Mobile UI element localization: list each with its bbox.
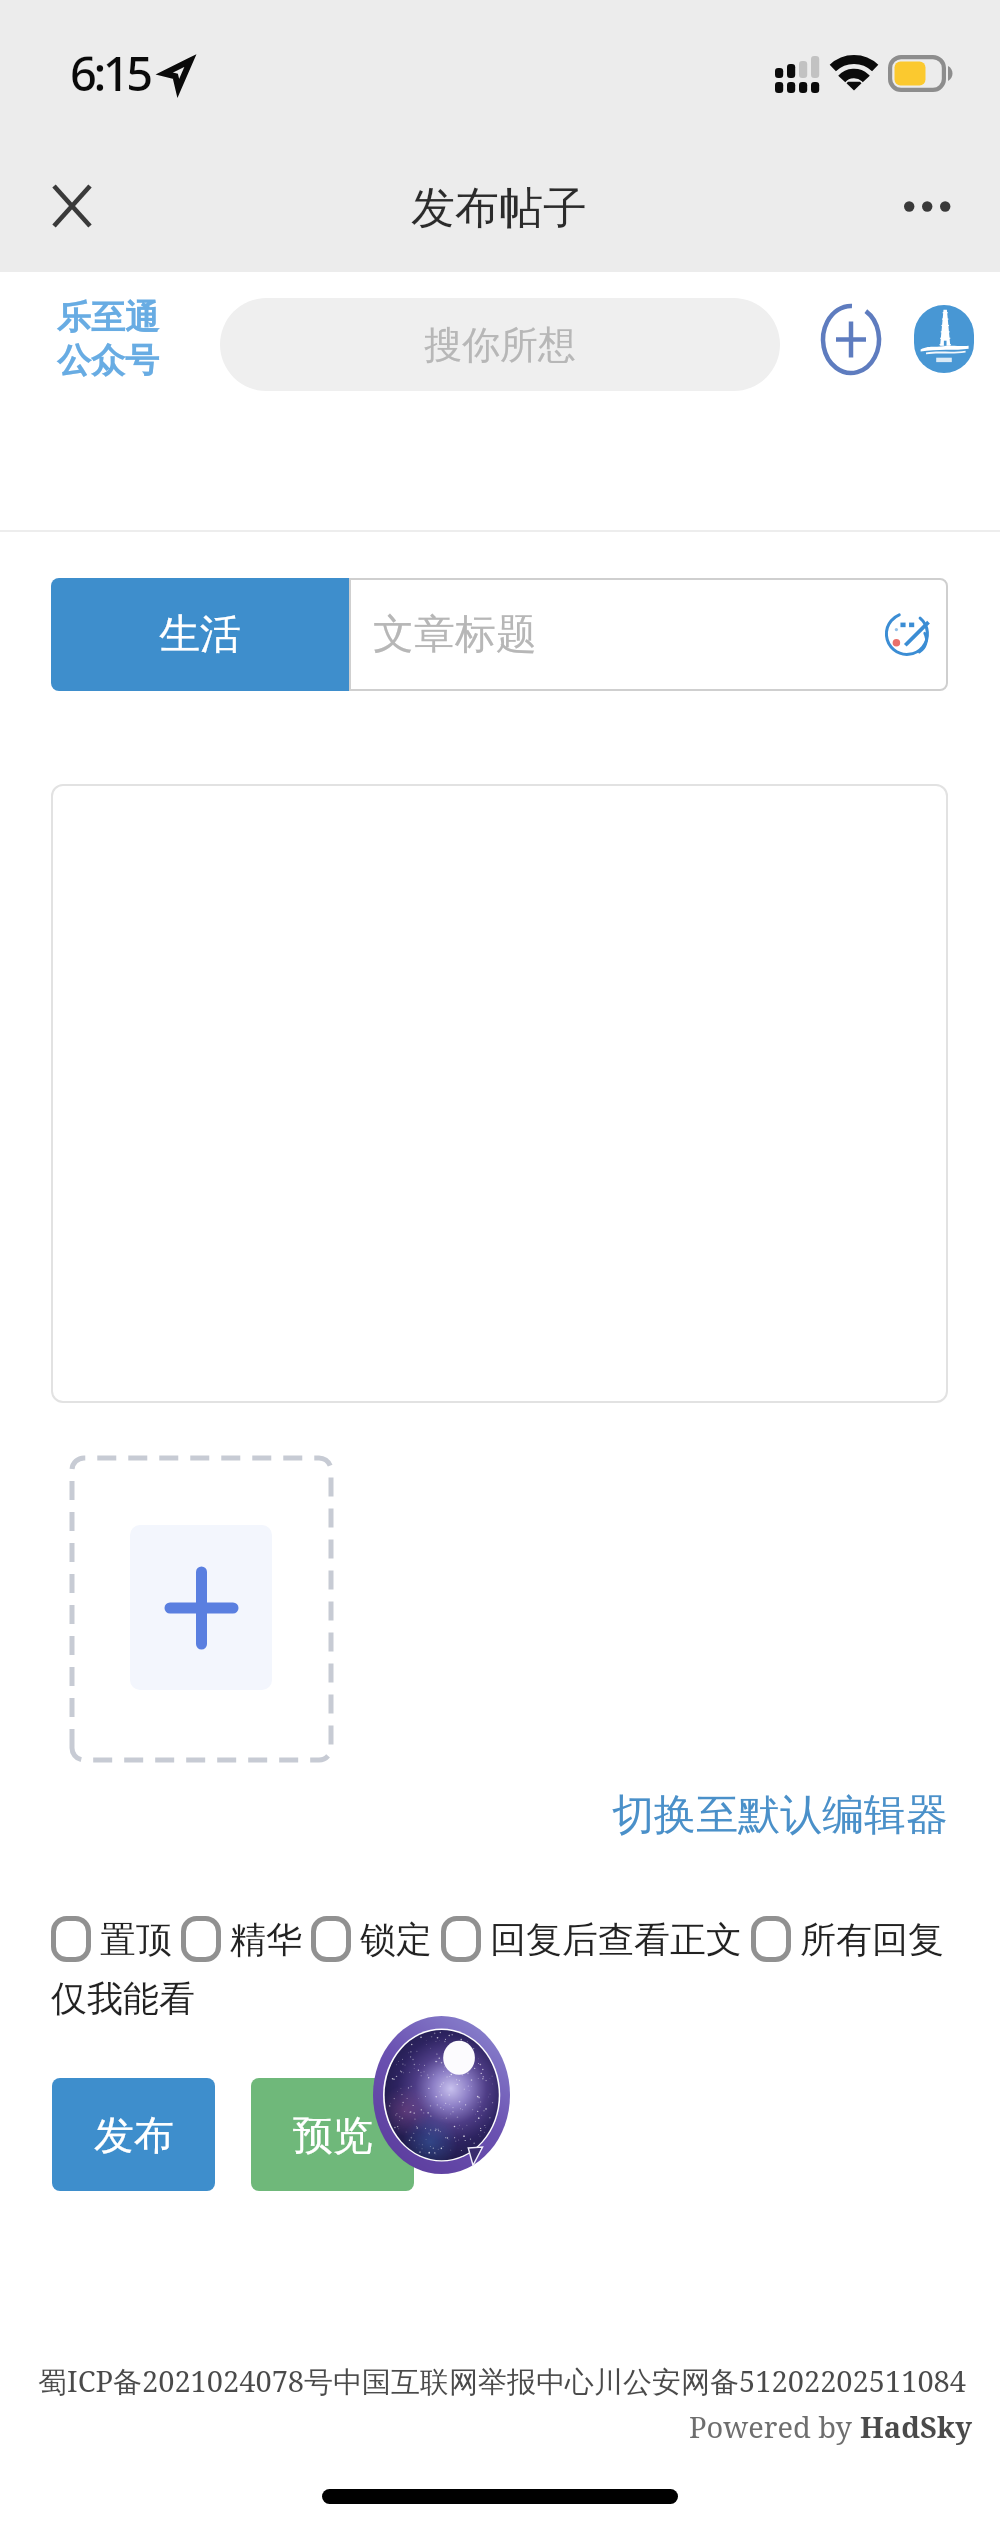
staticText: 6:15 xyxy=(70,41,150,105)
staticText: 所有回复 xyxy=(800,1917,944,1962)
button[interactable]: Add image xyxy=(70,1456,333,1762)
staticText: HadSky xyxy=(860,2407,973,2446)
staticText: 公众号 xyxy=(57,339,159,382)
button[interactable]: 生活 xyxy=(51,578,349,691)
staticText: 回复后查看正文 xyxy=(490,1917,742,1962)
staticText: 锁定 xyxy=(360,1917,432,1962)
button[interactable]: Close xyxy=(28,161,116,251)
staticText: 置顶 xyxy=(100,1917,172,1962)
staticText: 切换至默认编辑器 xyxy=(612,1789,948,1842)
staticText: 仅我能看 xyxy=(51,1976,195,2021)
staticText: 精华 xyxy=(230,1917,302,1962)
staticText: 预览 xyxy=(293,2110,373,2160)
button[interactable]: Add xyxy=(820,303,882,376)
button[interactable]: 置顶 xyxy=(51,1916,181,1962)
button[interactable]: 搜你所想 xyxy=(220,298,780,391)
button[interactable]: More options xyxy=(883,161,973,251)
staticText: 文章标题 xyxy=(373,609,537,661)
button[interactable]: Assistant xyxy=(373,2016,510,2174)
staticText: 乐至通 xyxy=(57,296,159,339)
button[interactable]: 精华 xyxy=(181,1916,311,1962)
staticText: 生活 xyxy=(159,609,241,661)
staticText: 蜀ICP备2021024078号中国互联网举报中心川公安网备5120220251… xyxy=(38,2361,967,2401)
button[interactable]: 回复后查看正文 xyxy=(441,1916,751,1962)
button[interactable]: Profile xyxy=(914,305,974,373)
staticText: 搜你所想 xyxy=(424,321,576,369)
button[interactable]: 锁定 xyxy=(311,1916,441,1962)
button[interactable]: 文章标题 xyxy=(349,578,948,691)
staticText: Powered by xyxy=(689,2407,860,2446)
staticText: 发布 xyxy=(94,2110,174,2160)
button[interactable]: 所有回复 xyxy=(751,1916,953,1962)
button[interactable]: 发布 xyxy=(52,2078,215,2191)
staticText: 发布帖子 xyxy=(411,181,587,236)
button[interactable]: 预览 xyxy=(251,2078,414,2191)
button[interactable]: 切换至默认编辑器 xyxy=(612,1789,948,1842)
